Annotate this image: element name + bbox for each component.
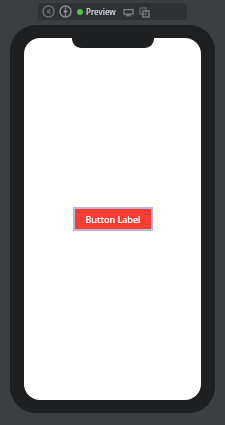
button[interactable]: Button Label	[75, 209, 151, 229]
button[interactable]: Device	[121, 5, 135, 19]
staticText: Button Label	[85, 213, 141, 225]
button[interactable]: Previous	[41, 4, 56, 19]
button[interactable]: Build	[58, 4, 73, 19]
staticText: Preview	[86, 6, 116, 17]
button[interactable]: Layout options	[137, 5, 151, 19]
